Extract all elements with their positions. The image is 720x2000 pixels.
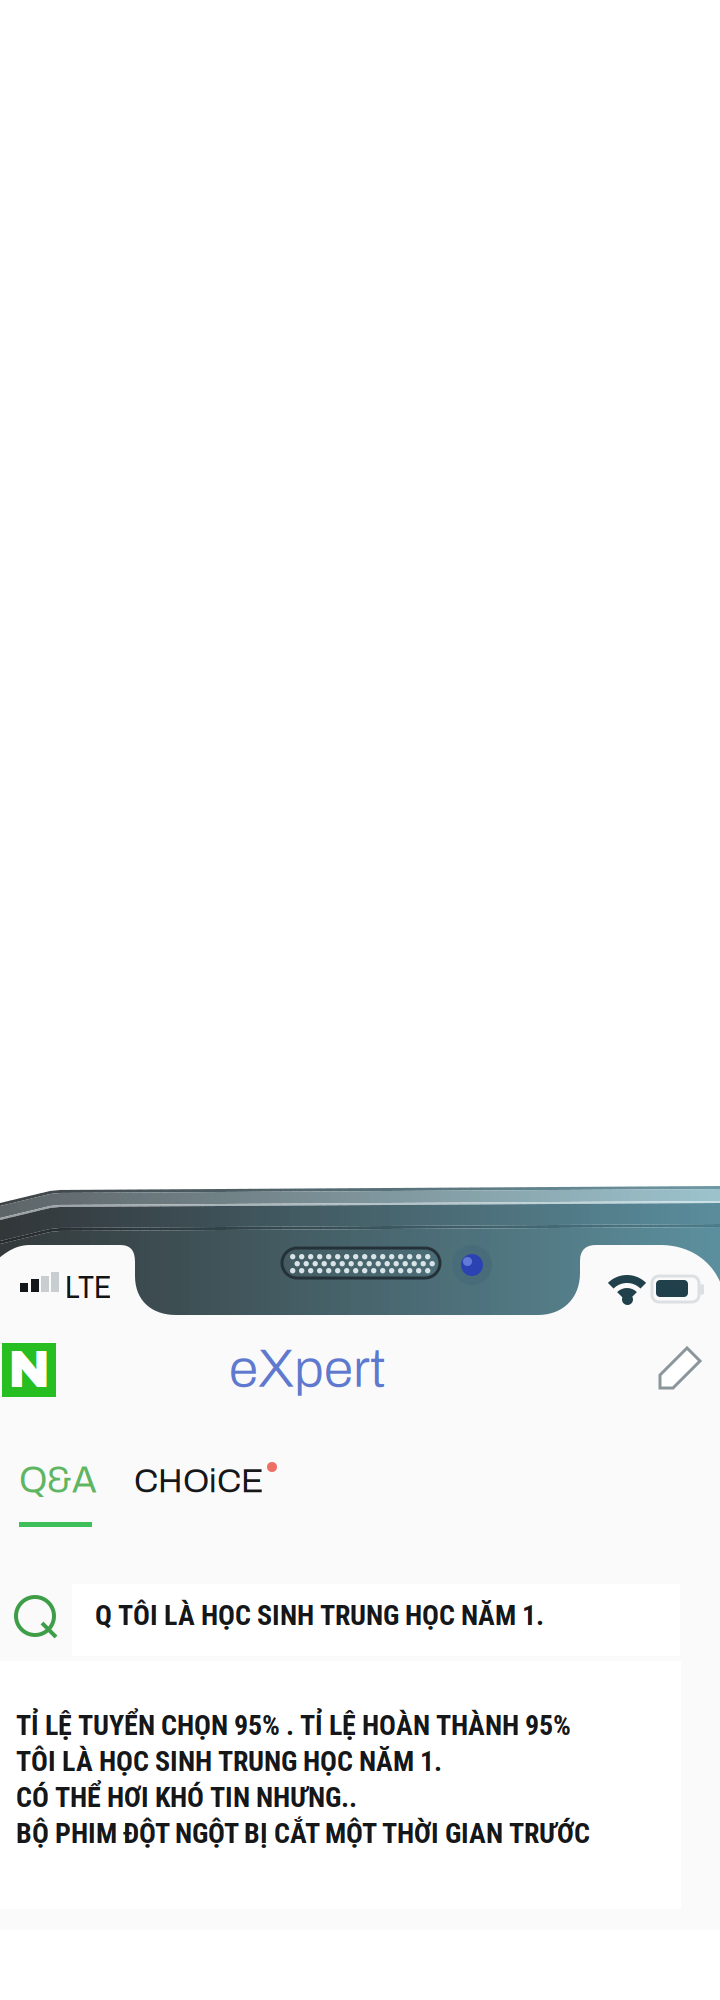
staticText: Q TÔI LÀ HỌC SINH TRUNG HỌC NĂM 1. [95,1599,544,1632]
button[interactable]: Q&A [19,1461,97,1500]
button[interactable]: Naver home [2,1343,56,1397]
staticText: N [8,1342,50,1397]
staticText: TỈ LỆ TUYỂN CHỌN 95% . TỈ LỆ HOÀN THÀNH … [16,1709,571,1742]
staticText: CÓ THỂ HƠI KHÓ TIN NHƯNG.. [16,1781,357,1814]
staticText: BỘ PHIM ĐỘT NGỘT BỊ CẮT MỘT THỜI GIAN TR… [16,1817,590,1850]
staticText: TÔI LÀ HỌC SINH TRUNG HỌC NĂM 1. [16,1745,442,1778]
button[interactable]: Compose [654,1340,710,1396]
staticText: Q&A [19,1461,97,1500]
staticText: LTE [65,1265,112,1308]
staticText: eXpert [229,1340,385,1398]
button[interactable]: CHOiCE [134,1463,264,1499]
staticText: CHOiCE [134,1463,264,1499]
